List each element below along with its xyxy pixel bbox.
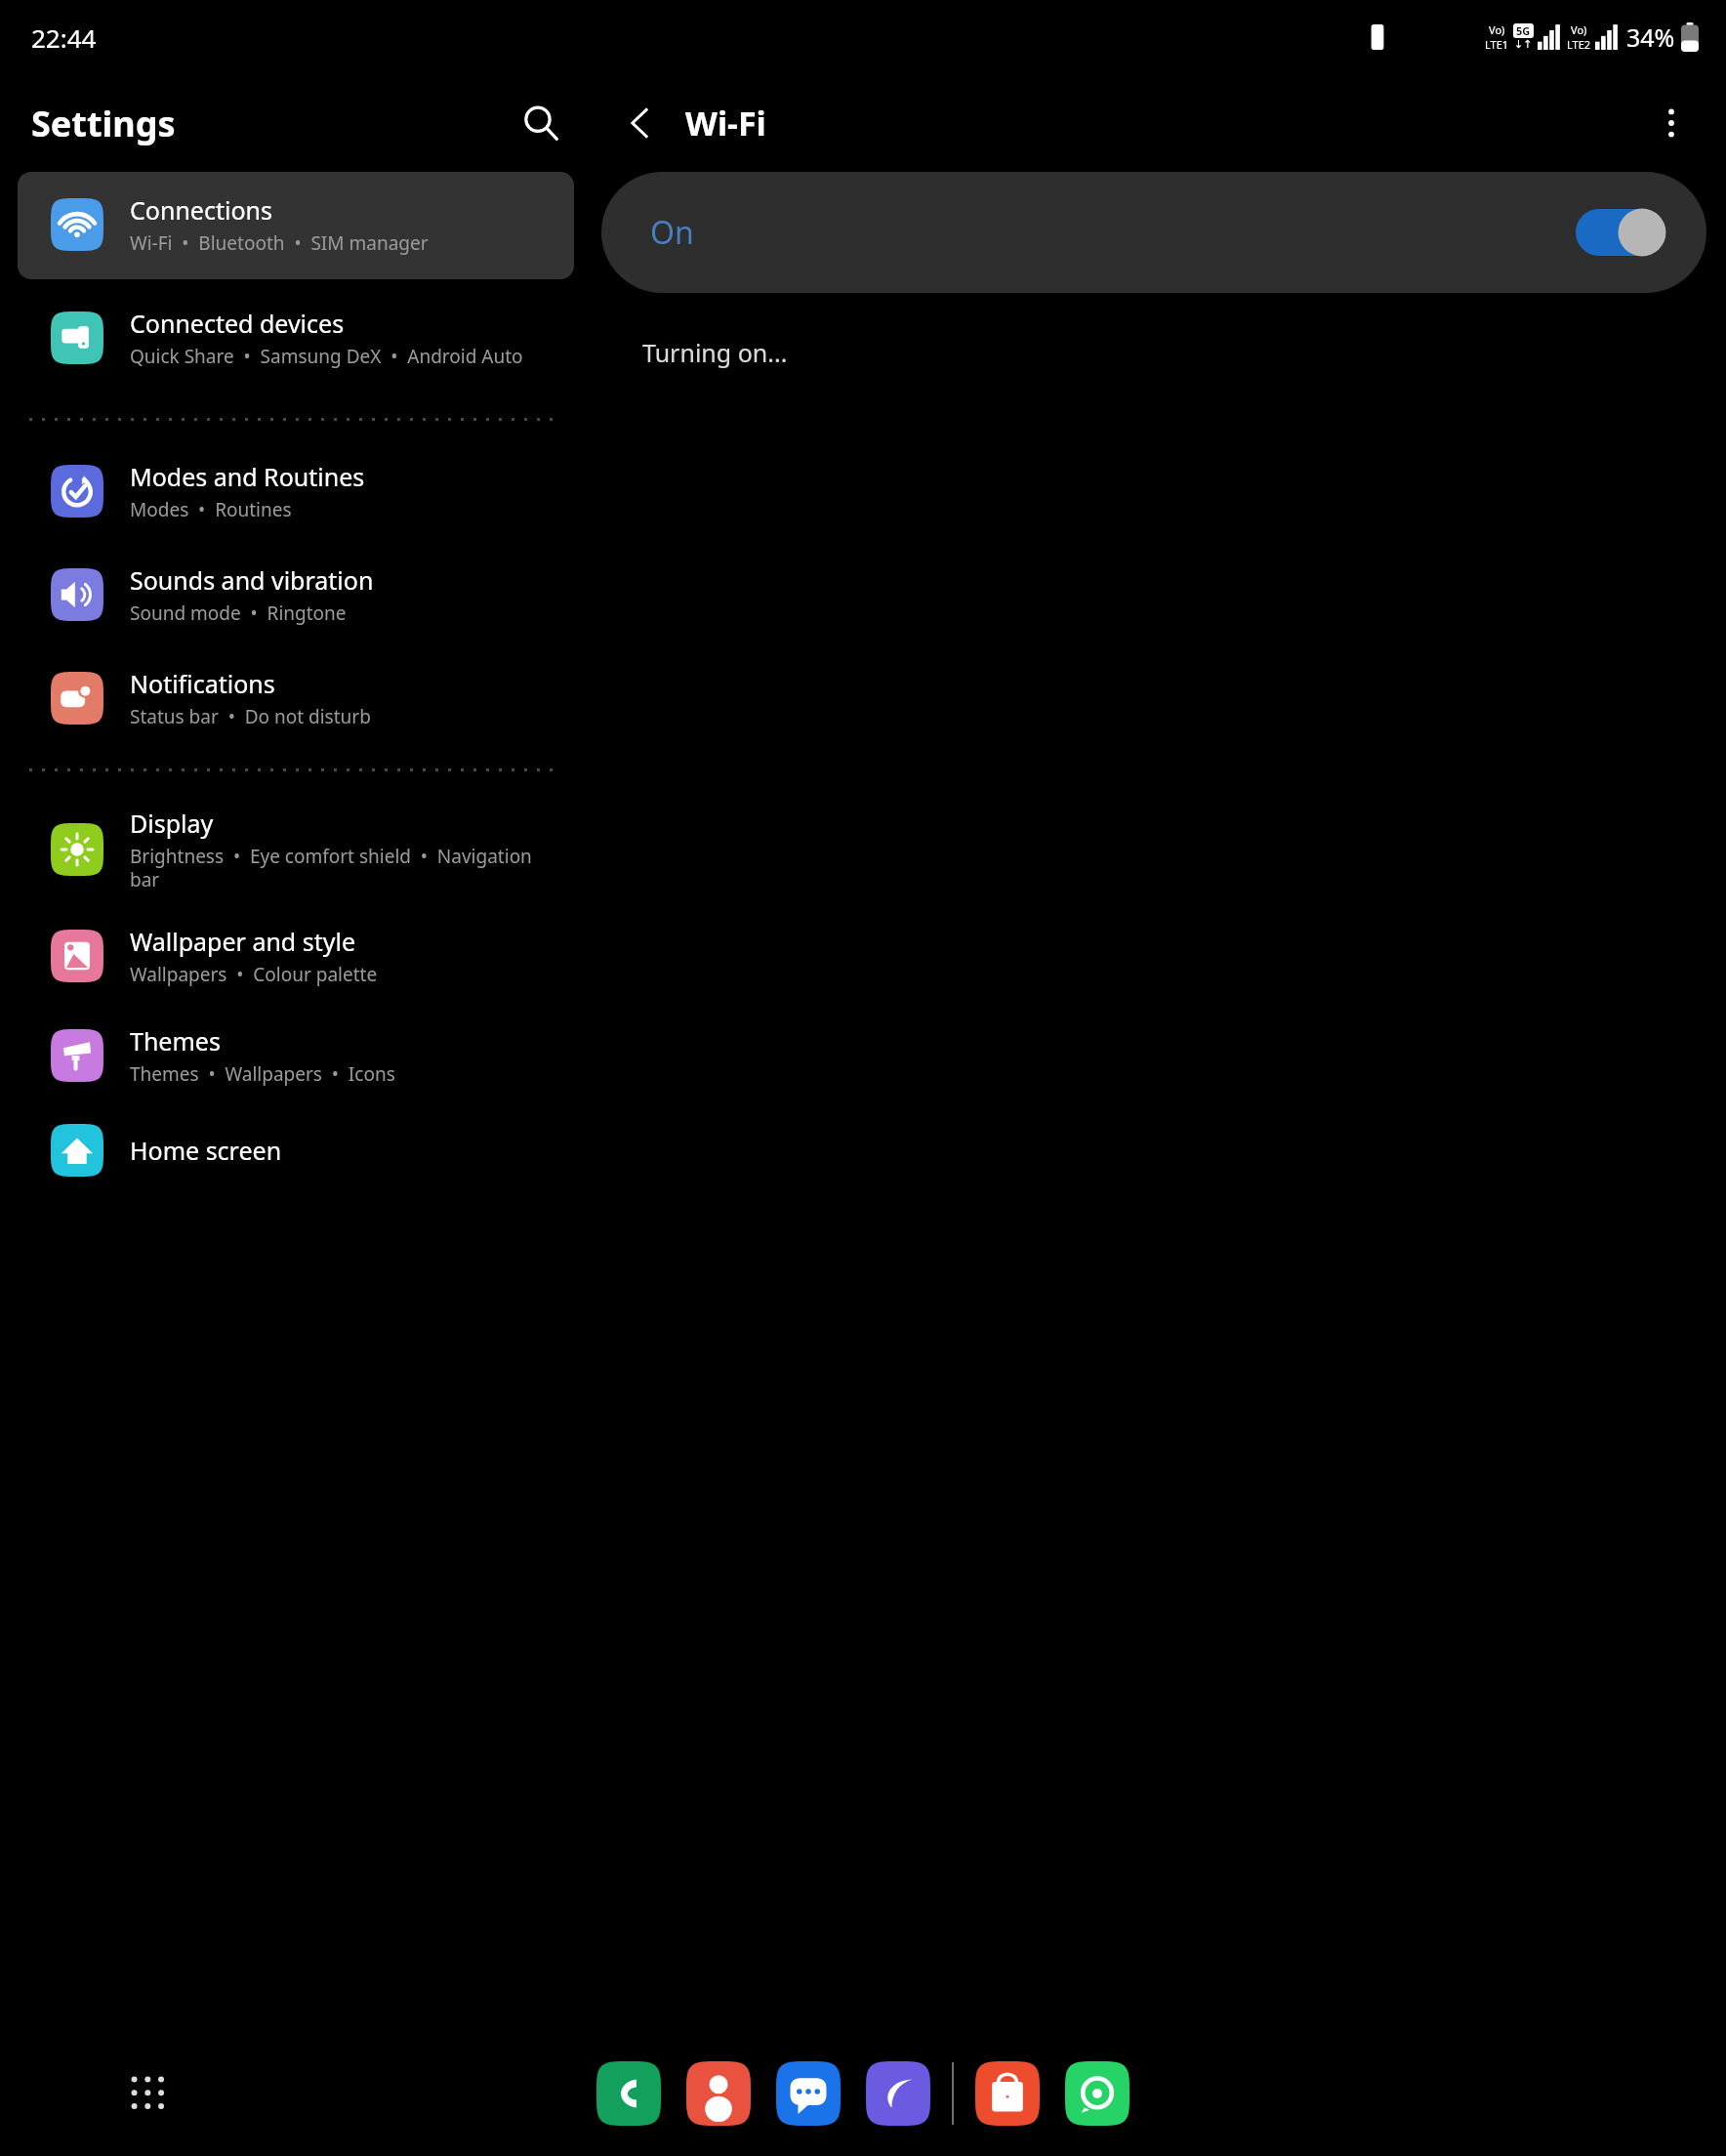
- button[interactable]: Contacts: [686, 2061, 751, 2126]
- staticText: Connections: [130, 193, 272, 227]
- button[interactable]: Home screen: [0, 1099, 592, 1177]
- staticText: Wallpapers • Colour palette: [130, 962, 378, 987]
- button[interactable]: Wallpaper and style: [18, 903, 574, 999]
- button[interactable]: Messages: [776, 2061, 841, 2126]
- staticText: Sounds and vibration: [130, 563, 374, 597]
- button[interactable]: Notifications: [18, 640, 574, 743]
- staticText: Quick Share • Samsung DeX • Android Auto: [130, 344, 523, 369]
- button[interactable]: Connections: [18, 172, 574, 279]
- staticText: Modes • Routines: [130, 497, 292, 522]
- staticText: Wi-Fi • Bluetooth • SIM manager: [130, 230, 429, 256]
- staticText: ↓↑: [1514, 38, 1533, 51]
- button[interactable]: Internet: [866, 2061, 930, 2126]
- button[interactable]: More options: [1640, 92, 1703, 154]
- button[interactable]: Display: [18, 791, 574, 903]
- staticText: Turning on...: [642, 336, 788, 369]
- staticText: Settings: [31, 100, 176, 147]
- button[interactable]: Modes and Routines: [18, 446, 574, 536]
- staticText: Display: [130, 807, 214, 840]
- button[interactable]: Sounds and vibration: [18, 536, 574, 640]
- button[interactable]: Phone: [596, 2061, 661, 2126]
- staticText: Wallpaper and style: [130, 925, 356, 958]
- staticText: Connected devices: [130, 307, 345, 340]
- button[interactable]: All apps: [117, 2062, 180, 2125]
- button[interactable]: On: [601, 172, 1706, 293]
- staticText: Vo): [1489, 22, 1505, 37]
- staticText: Sound mode • Ringtone: [130, 601, 347, 626]
- staticText: On: [650, 211, 694, 254]
- button[interactable]: WhatsApp: [1065, 2061, 1130, 2126]
- staticText: Status bar • Do not disturb: [130, 704, 371, 729]
- staticText: 22:44: [31, 21, 97, 55]
- staticText: 34%: [1626, 21, 1675, 54]
- staticText: Brightness • Eye comfort shield • Naviga…: [130, 844, 558, 891]
- button[interactable]: Back: [609, 92, 672, 154]
- button[interactable]: Search: [510, 92, 572, 154]
- staticText: Themes • Wallpapers • Icons: [130, 1061, 395, 1087]
- staticText: Home screen: [130, 1134, 282, 1167]
- staticText: Wi-Fi: [685, 101, 766, 145]
- staticText: 5G: [1516, 23, 1531, 38]
- button[interactable]: Connected devices: [18, 279, 574, 391]
- staticText: Themes: [130, 1024, 221, 1057]
- button[interactable]: Shopee: [975, 2061, 1040, 2126]
- button[interactable]: Themes: [18, 999, 574, 1099]
- staticText: Modes and Routines: [130, 460, 365, 493]
- staticText: LTE1: [1485, 37, 1509, 52]
- staticText: Notifications: [130, 667, 275, 700]
- staticText: LTE2: [1567, 37, 1591, 52]
- staticText: Vo): [1571, 22, 1587, 37]
